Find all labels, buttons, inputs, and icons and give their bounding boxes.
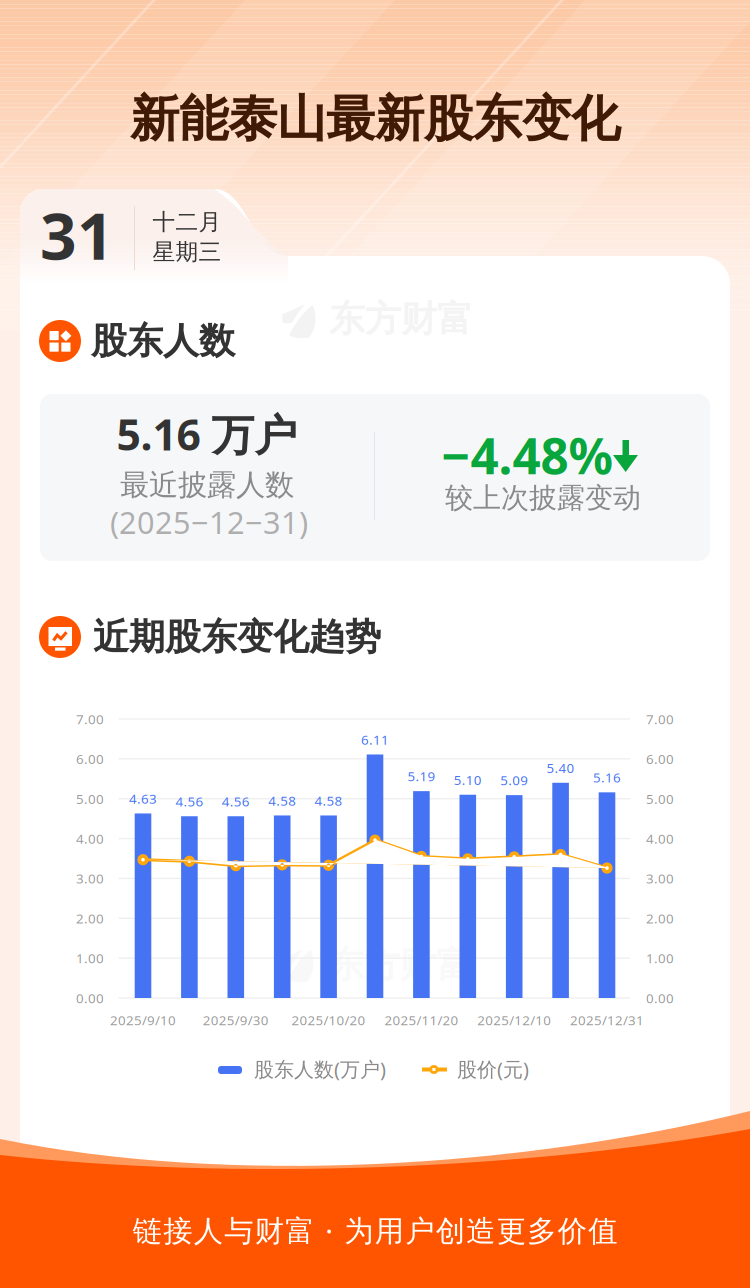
staticText: 5.16 <box>593 768 621 786</box>
staticText: (2025−12−31) <box>110 502 308 542</box>
staticText: 5.40 <box>547 759 575 777</box>
staticText: 4.56 <box>222 792 250 810</box>
staticText: 5.10 <box>454 771 482 789</box>
staticText: 6.00 <box>646 750 674 768</box>
staticText: 2025/10/20 <box>292 1011 366 1029</box>
staticText: 1.00 <box>646 949 674 967</box>
staticText: 4.00 <box>646 830 674 847</box>
staticText: 股东人数(万户) <box>254 1056 386 1082</box>
staticText: 2025/12/10 <box>477 1011 551 1029</box>
staticText: 近期股东变化趋势 <box>93 615 381 659</box>
staticText: 4.00 <box>76 830 104 847</box>
staticText: 2.00 <box>646 909 674 927</box>
staticText: 5.09 <box>500 771 528 789</box>
staticText: 2025/11/20 <box>384 1011 458 1029</box>
staticText: 5.00 <box>76 790 104 808</box>
staticText: 星期三 <box>152 238 221 266</box>
staticText: 2025/12/31 <box>570 1011 644 1029</box>
staticText: 6.00 <box>76 750 104 768</box>
staticText: 7.00 <box>646 710 674 728</box>
staticText: 最近披露人数 <box>120 467 294 503</box>
staticText: 2025/9/30 <box>203 1011 269 1029</box>
staticText: 4.63 <box>129 790 157 807</box>
staticText: 东方财富 <box>328 943 472 987</box>
staticText: 5.16 万户 <box>116 406 297 462</box>
staticText: 5.19 <box>407 767 435 785</box>
staticText: 链接人与财富 · 为用户创造更多价值 <box>133 1210 617 1249</box>
staticText: 新能泰山最新股东变化 <box>130 89 620 149</box>
staticText: 较上次披露变动 <box>445 481 641 515</box>
staticText: 4.58 <box>315 792 343 809</box>
staticText: 0.00 <box>646 989 674 1007</box>
staticText: 股价(元) <box>457 1056 529 1082</box>
staticText: 十二月 <box>152 208 221 236</box>
staticText: 3.00 <box>76 870 104 887</box>
staticText: 0.00 <box>76 989 104 1007</box>
staticText: 4.56 <box>175 792 203 810</box>
staticText: 股东人数 <box>91 319 235 363</box>
staticText: 1.00 <box>76 949 104 967</box>
staticText: 2025/9/10 <box>110 1011 176 1029</box>
staticText: 7.00 <box>76 710 104 728</box>
staticText: 3.00 <box>646 870 674 887</box>
staticText: 5.00 <box>646 790 674 808</box>
staticText: 4.58 <box>268 792 296 809</box>
staticText: 东方财富 <box>329 297 473 341</box>
staticText: 2.00 <box>76 909 104 927</box>
staticText: 31 <box>40 192 114 277</box>
staticText: −4.48% <box>441 422 612 488</box>
staticText: 6.11 <box>361 731 389 748</box>
